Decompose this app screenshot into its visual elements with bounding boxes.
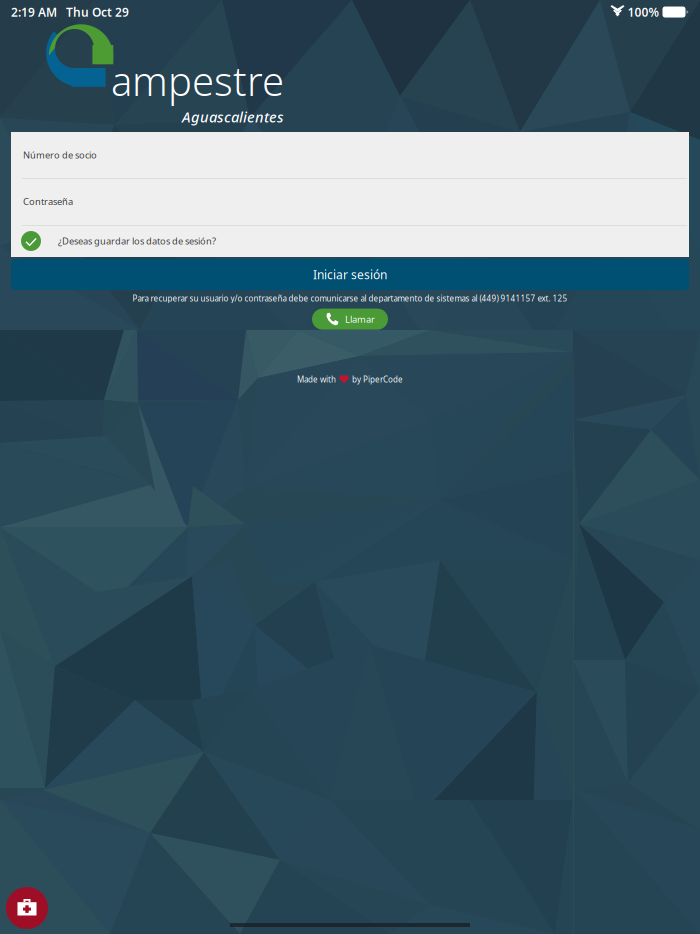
staticText: Para recuperar su usuario y/o contraseña… bbox=[132, 293, 567, 304]
button[interactable]: ¿Deseas guardar los datos de sesión? bbox=[11, 225, 689, 257]
button[interactable]: Llamar bbox=[312, 309, 388, 330]
button[interactable]: Contraseña bbox=[11, 178, 689, 225]
staticText: ¿Deseas guardar los datos de sesión? bbox=[58, 235, 216, 247]
staticText: by PiperCode bbox=[352, 374, 403, 385]
staticText: Número de socio bbox=[23, 149, 97, 161]
staticText: Contraseña bbox=[23, 195, 73, 208]
staticText: 2:19 AM bbox=[11, 4, 57, 20]
staticText: Thu Oct 29 bbox=[57, 4, 129, 20]
staticText: ampestre bbox=[111, 54, 284, 107]
button[interactable]: Número de socio bbox=[11, 132, 689, 178]
button[interactable]: Iniciar sesión bbox=[11, 259, 689, 290]
staticText: Aguascalientes bbox=[182, 107, 284, 127]
staticText: Made with bbox=[297, 374, 336, 385]
staticText: Iniciar sesión bbox=[313, 266, 387, 282]
button[interactable]: Emergencias bbox=[6, 887, 48, 929]
staticText: 100% bbox=[624, 4, 662, 20]
staticText: Llamar bbox=[345, 313, 375, 325]
